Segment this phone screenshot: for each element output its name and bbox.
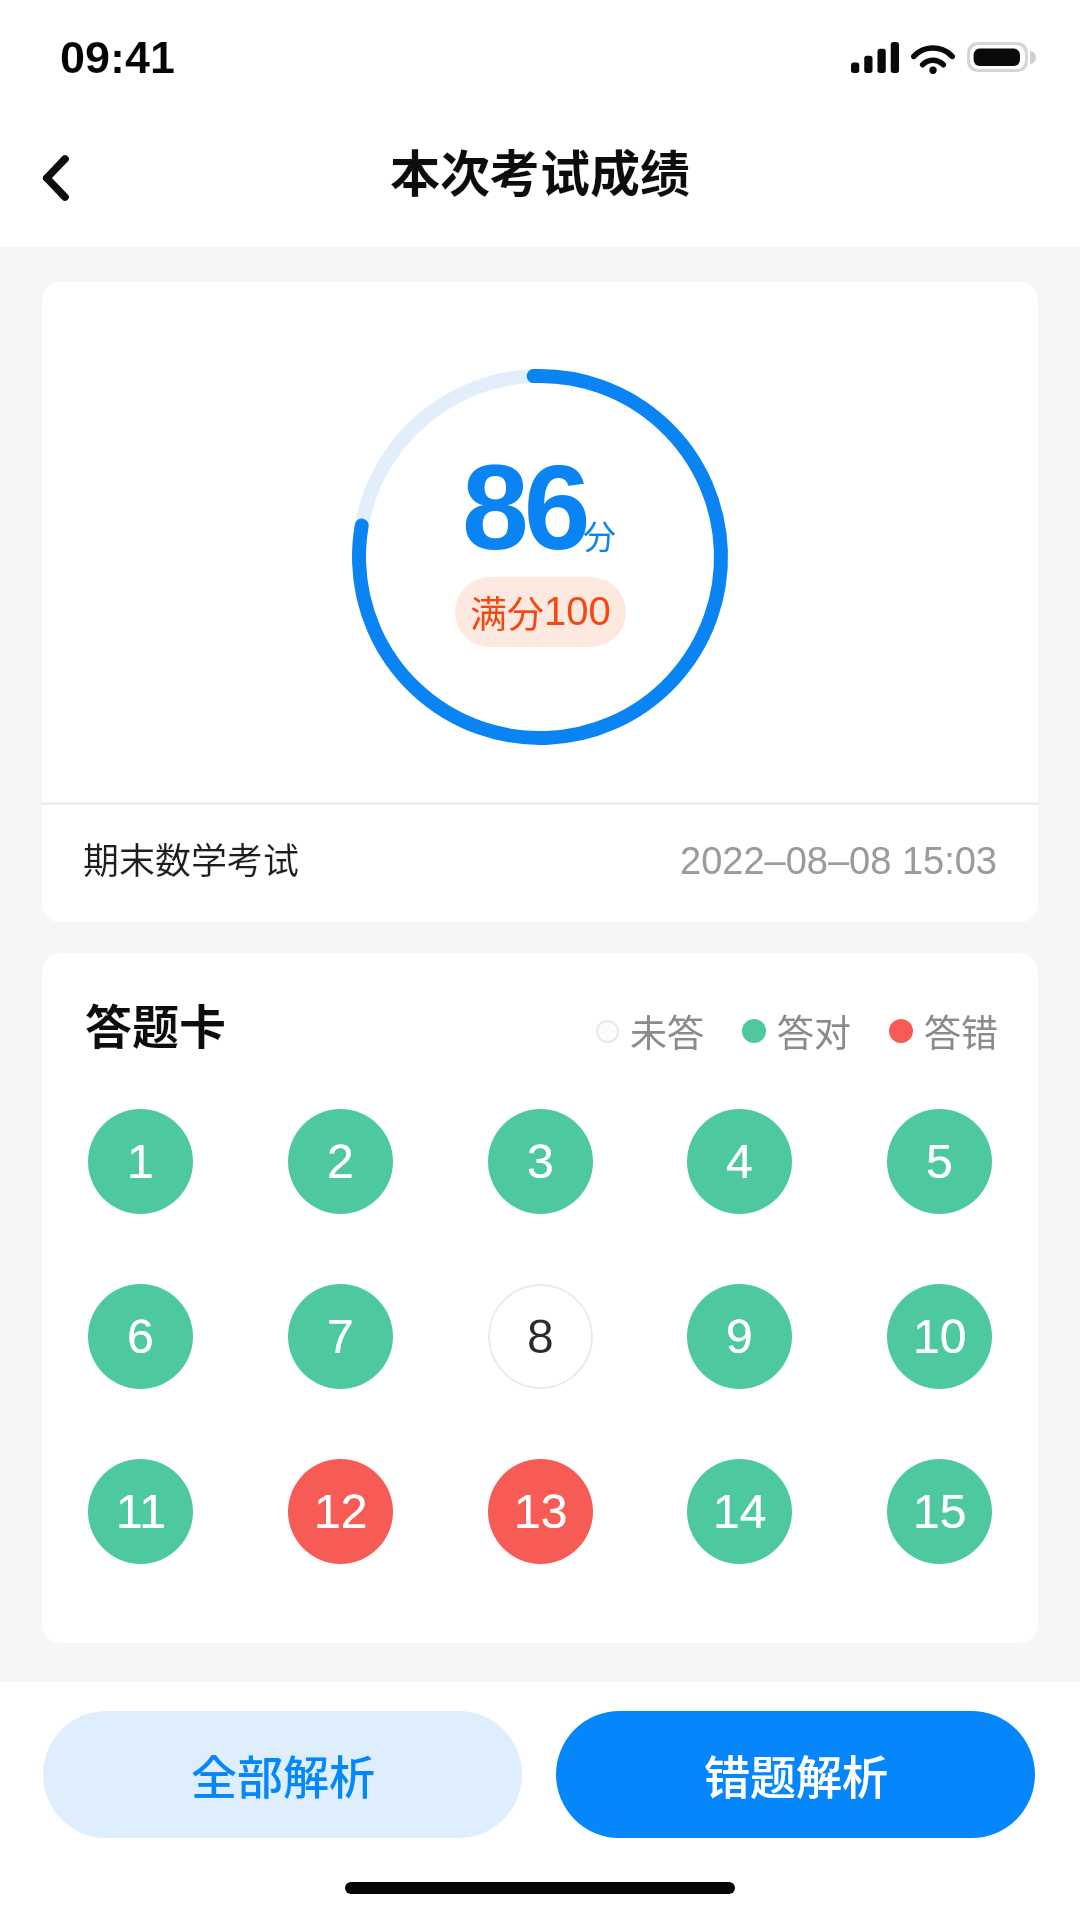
staticText: 8	[527, 1310, 554, 1364]
button[interactable]: 14	[687, 1459, 792, 1564]
button[interactable]: 11	[88, 1459, 193, 1564]
button[interactable]: 全部解析	[43, 1711, 522, 1838]
staticText: 全部解析	[191, 1741, 375, 1808]
staticText: 11	[116, 1485, 166, 1539]
button[interactable]: 7	[288, 1284, 393, 1389]
button[interactable]: 6	[88, 1284, 193, 1389]
staticText: 答错	[924, 1004, 998, 1058]
staticText: 09:41	[60, 32, 176, 82]
staticText: 4	[726, 1135, 753, 1189]
button[interactable]: 1	[88, 1109, 193, 1214]
staticText: 7	[327, 1310, 354, 1364]
staticText: 10	[913, 1310, 967, 1364]
staticText: 本次考试成绩	[390, 134, 690, 206]
button[interactable]: 12	[288, 1459, 393, 1564]
button[interactable]: Back	[12, 134, 100, 222]
button[interactable]: 2	[288, 1109, 393, 1214]
staticText: 1	[127, 1135, 154, 1189]
button[interactable]: 3	[488, 1109, 593, 1214]
button[interactable]: 15	[887, 1459, 992, 1564]
staticText: 答对	[777, 1004, 851, 1058]
button[interactable]: 9	[687, 1284, 792, 1389]
staticText: 答题卡	[85, 989, 226, 1057]
staticText: 13	[514, 1485, 568, 1539]
staticText: 2	[327, 1135, 354, 1189]
staticText: 9	[726, 1310, 753, 1364]
staticText: 2022–08–08 15:03	[680, 840, 997, 882]
button[interactable]: 4	[687, 1109, 792, 1214]
button[interactable]: 10	[887, 1284, 992, 1389]
button[interactable]: 错题解析	[556, 1711, 1035, 1838]
staticText: 未答	[630, 1004, 704, 1058]
staticText: 12	[314, 1485, 368, 1539]
staticText: 分	[583, 511, 616, 559]
staticText: 86	[462, 440, 586, 574]
staticText: 期末数学考试	[83, 832, 300, 884]
staticText: 15	[913, 1485, 967, 1539]
staticText: 6	[127, 1310, 154, 1364]
button[interactable]: 13	[488, 1459, 593, 1564]
staticText: 5	[926, 1135, 953, 1189]
staticText: 满分	[470, 585, 544, 639]
button[interactable]: 8	[488, 1284, 593, 1389]
button[interactable]: 5	[887, 1109, 992, 1214]
staticText: 100	[544, 589, 611, 634]
staticText: 错题解析	[704, 1741, 888, 1808]
staticText: 3	[527, 1135, 554, 1189]
staticText: 14	[713, 1485, 767, 1539]
